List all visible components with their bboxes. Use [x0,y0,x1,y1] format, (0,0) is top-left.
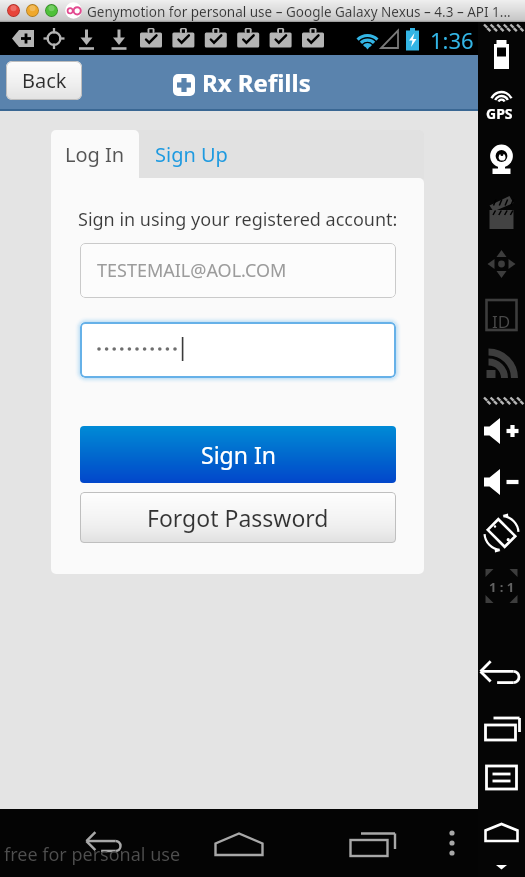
staticText: Back [22,67,67,94]
button[interactable]: Home [478,810,525,854]
button[interactable]: Identifiers [478,294,525,336]
staticText: Sign Up [155,141,228,168]
button[interactable]: TESTEMAIL@AOL.COM [80,243,396,298]
button[interactable]: Recent apps [478,706,525,750]
staticText: Sign In [201,439,276,470]
button[interactable]: Back [68,809,144,877]
button[interactable]: Scale one to one [478,564,525,608]
button[interactable]: Camera [478,148,525,190]
button[interactable]: Minimise window [26,4,39,17]
button[interactable]: GPS [478,104,525,146]
button[interactable] [80,322,396,378]
button[interactable]: Pan and zoom [478,250,525,292]
button[interactable]: Back [6,61,82,100]
button[interactable]: Sign In [80,426,396,483]
staticText: GPS [486,104,513,123]
button[interactable]: Screen recorder [478,200,525,242]
staticText: ID [492,310,511,333]
button[interactable]: Recent apps [332,809,408,877]
button[interactable]: Volume down [478,460,525,502]
button[interactable]: Battery [478,56,525,96]
button[interactable]: Volume up [478,408,525,450]
button[interactable]: Menu [478,756,525,800]
staticText: Genymotion for personal use – Google Gal… [87,3,511,21]
button[interactable]: Zoom window [45,4,58,17]
staticText: Forgot Password [147,502,329,533]
button[interactable]: Home [200,809,276,877]
button[interactable]: Rotate screen [478,512,525,556]
button[interactable]: More options [424,809,480,877]
staticText: 1 : 1 [489,578,515,596]
staticText: 1:36 [430,25,474,55]
staticText: Sign in using your registered account: [78,207,398,232]
staticText: free for personal use [4,842,181,867]
staticText: TESTEMAIL@AOL.COM [97,258,287,283]
button[interactable]: Log In [51,130,139,179]
button[interactable]: Forgot Password [80,492,396,543]
staticText: Log In [65,141,125,168]
button[interactable]: Close window [7,4,20,17]
button[interactable]: Network [478,352,525,396]
button[interactable]: Sign Up [139,130,244,179]
button[interactable]: Show more [478,858,525,877]
staticText: Rx Refills [202,66,311,99]
button[interactable]: Back [478,656,525,700]
